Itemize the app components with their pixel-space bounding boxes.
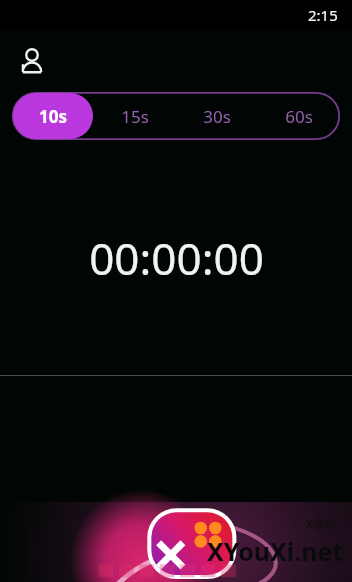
button[interactable]: Profile — [14, 43, 50, 79]
button[interactable]: 15s — [95, 93, 175, 139]
staticText: 2:15 — [308, 5, 338, 25]
button[interactable]: 30s — [177, 93, 257, 139]
button[interactable]: 10s — [13, 93, 93, 139]
button[interactable]: 60s — [259, 93, 339, 139]
staticText: 15s — [121, 105, 149, 128]
staticText: XYouXi.net — [207, 534, 344, 568]
staticText: 30s — [203, 105, 231, 128]
staticText: 10s — [39, 105, 67, 128]
staticText: X游戏 — [306, 516, 336, 531]
staticText: 60s — [285, 105, 313, 128]
staticText: 00:00:00 — [89, 228, 264, 288]
